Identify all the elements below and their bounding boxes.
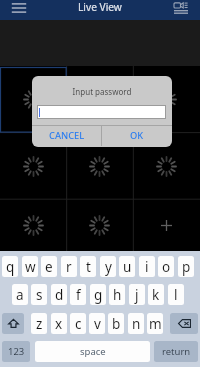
button[interactable]: x — [51, 313, 67, 334]
button[interactable]: d — [51, 284, 67, 305]
staticText: OK — [130, 129, 144, 142]
button[interactable]: f — [70, 284, 86, 305]
staticText: return — [162, 345, 191, 358]
button[interactable]: u — [119, 256, 135, 277]
staticText: x — [55, 315, 63, 333]
button[interactable]: a — [12, 284, 28, 305]
staticText: h — [113, 286, 122, 304]
staticText: d — [55, 286, 64, 304]
button[interactable]: Shift — [2, 313, 24, 334]
staticText: w — [25, 258, 36, 276]
staticText: y — [105, 258, 112, 276]
button[interactable]: Menu — [2, 0, 36, 20]
button[interactable]: o — [158, 256, 174, 277]
staticText: k — [152, 286, 160, 304]
staticText: n — [132, 315, 141, 333]
button[interactable]: Camera channel — [0, 200, 66, 251]
button[interactable]: c — [70, 313, 86, 334]
button[interactable]: Camera channel — [133, 133, 200, 200]
staticText: CANCEL — [49, 129, 85, 142]
staticText: a — [16, 286, 24, 304]
button[interactable]: i — [139, 256, 155, 277]
button[interactable]: k — [148, 284, 164, 305]
staticText: s — [36, 286, 43, 304]
staticText: p — [182, 258, 191, 276]
button[interactable]: e — [41, 256, 57, 277]
staticText: r — [66, 258, 72, 276]
staticText: l — [174, 286, 178, 304]
staticText: z — [36, 315, 43, 333]
button[interactable]: Backspace — [170, 313, 198, 334]
button[interactable]: z — [31, 313, 47, 334]
staticText: o — [162, 258, 171, 276]
button[interactable]: t — [80, 256, 96, 277]
staticText: u — [123, 258, 132, 276]
staticText: space — [80, 345, 106, 358]
button[interactable]: y — [100, 256, 116, 277]
button[interactable]: w — [22, 256, 38, 277]
staticText: e — [45, 258, 53, 276]
button[interactable]: Camera channel — [66, 133, 133, 200]
button[interactable]: return — [154, 341, 198, 362]
staticText: b — [112, 315, 121, 333]
button[interactable]: h — [109, 284, 125, 305]
button[interactable]: Camera channel — [133, 66, 200, 133]
button[interactable]: Password field — [37, 105, 166, 119]
button[interactable]: b — [108, 313, 124, 334]
button[interactable]: g — [90, 284, 106, 305]
staticText: v — [94, 315, 101, 333]
button[interactable]: q — [2, 256, 18, 277]
staticText: Input password — [32, 86, 172, 97]
button[interactable]: j — [129, 284, 145, 305]
button[interactable]: r — [61, 256, 77, 277]
button[interactable]: Camera channel — [66, 66, 133, 133]
staticText: i — [145, 258, 149, 276]
button[interactable]: Camera channel — [0, 66, 66, 133]
staticText: q — [6, 258, 15, 276]
staticText: Live View — [78, 0, 122, 14]
button[interactable]: Add camera — [133, 200, 200, 251]
button[interactable]: p — [178, 256, 194, 277]
button[interactable]: s — [31, 284, 47, 305]
staticText: f — [76, 286, 81, 304]
button[interactable]: space — [35, 341, 150, 362]
staticText: t — [86, 258, 91, 276]
staticText: 123 — [8, 345, 25, 358]
staticText: m — [149, 315, 162, 333]
staticText: c — [75, 315, 82, 333]
button[interactable]: Camera channel — [0, 133, 66, 200]
button[interactable]: m — [147, 313, 163, 334]
staticText: j — [135, 286, 139, 304]
button[interactable]: 123 — [2, 341, 30, 362]
button[interactable]: Camera list — [170, 0, 196, 20]
button[interactable]: Camera channel — [66, 200, 133, 251]
button[interactable]: l — [168, 284, 184, 305]
button[interactable]: n — [128, 313, 144, 334]
button[interactable]: CANCEL — [32, 125, 101, 146]
staticText: g — [94, 286, 103, 304]
button[interactable]: OK — [102, 125, 172, 146]
button[interactable]: v — [89, 313, 105, 334]
